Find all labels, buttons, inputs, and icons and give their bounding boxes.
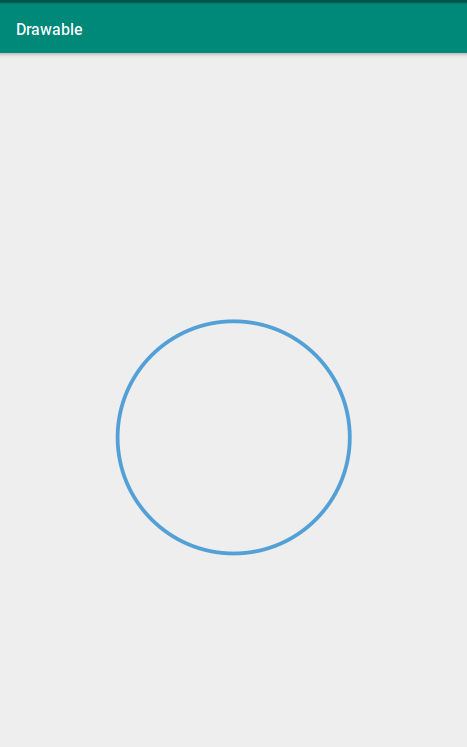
staticText: Drawable (16, 20, 83, 39)
